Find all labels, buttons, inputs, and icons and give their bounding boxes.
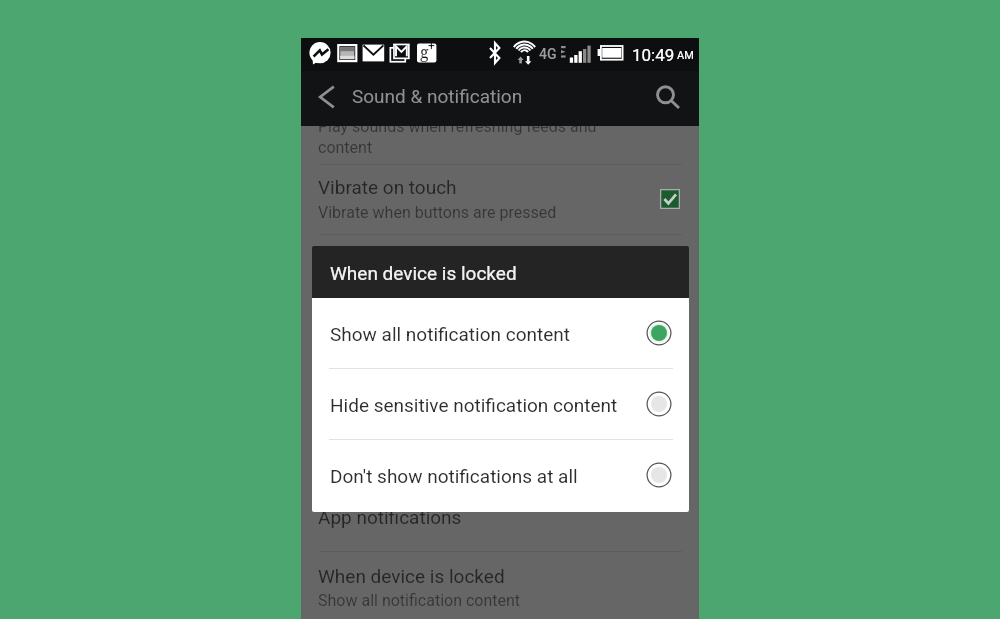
staticText: Sound & notification [352, 85, 523, 107]
staticText: 10:49 [632, 45, 675, 65]
staticText: Show all notification content [318, 591, 521, 610]
staticText: When device is locked [318, 565, 505, 587]
staticText: Show all notification content [330, 323, 570, 345]
staticText: Vibrate on touch [318, 176, 457, 198]
staticText: content [318, 138, 373, 157]
button[interactable]: Back [303, 73, 350, 120]
button[interactable]: Don't show notifications at all [312, 440, 689, 510]
staticText: Don't show notifications at all [330, 465, 578, 487]
button[interactable]: Search [643, 73, 690, 120]
staticText: Hide sensitive notification content [330, 394, 618, 416]
button[interactable]: Hide sensitive notification content [312, 369, 689, 439]
staticText: + [428, 39, 435, 53]
staticText: When device is locked [330, 262, 517, 284]
staticText: Vibrate when buttons are pressed [318, 203, 557, 222]
button[interactable]: Show all notification content [312, 298, 689, 368]
staticText: 4G [539, 46, 557, 62]
staticText: App notifications [318, 506, 462, 528]
staticText: AM [677, 49, 694, 62]
staticText: Play sounds when refreshing feeds and [318, 117, 597, 136]
staticText: g [420, 41, 429, 63]
